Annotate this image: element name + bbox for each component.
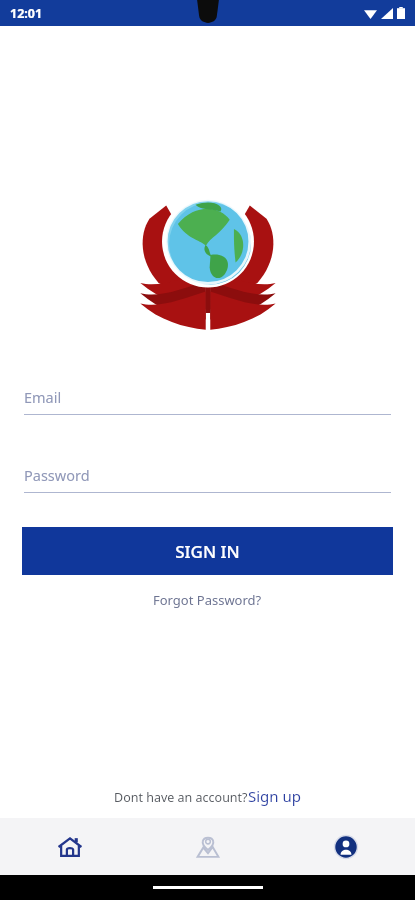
staticText: Dont have an account? bbox=[114, 789, 248, 806]
staticText: Email bbox=[24, 387, 62, 407]
button[interactable]: Profile bbox=[277, 818, 415, 875]
button[interactable]: Sign up bbox=[248, 786, 301, 806]
staticText: Forgot Password? bbox=[153, 591, 262, 609]
staticText: Sign up bbox=[248, 786, 301, 806]
button[interactable]: Email bbox=[24, 387, 391, 415]
staticText: SIGN IN bbox=[175, 540, 240, 563]
button[interactable]: Home bbox=[0, 818, 139, 875]
staticText: Password bbox=[24, 465, 90, 485]
button[interactable]: SIGN IN bbox=[22, 527, 393, 575]
staticText: 12:01 bbox=[10, 5, 43, 22]
button[interactable]: Map bbox=[139, 818, 277, 875]
button[interactable]: Password bbox=[24, 465, 391, 493]
button[interactable]: Forgot Password? bbox=[0, 585, 415, 615]
